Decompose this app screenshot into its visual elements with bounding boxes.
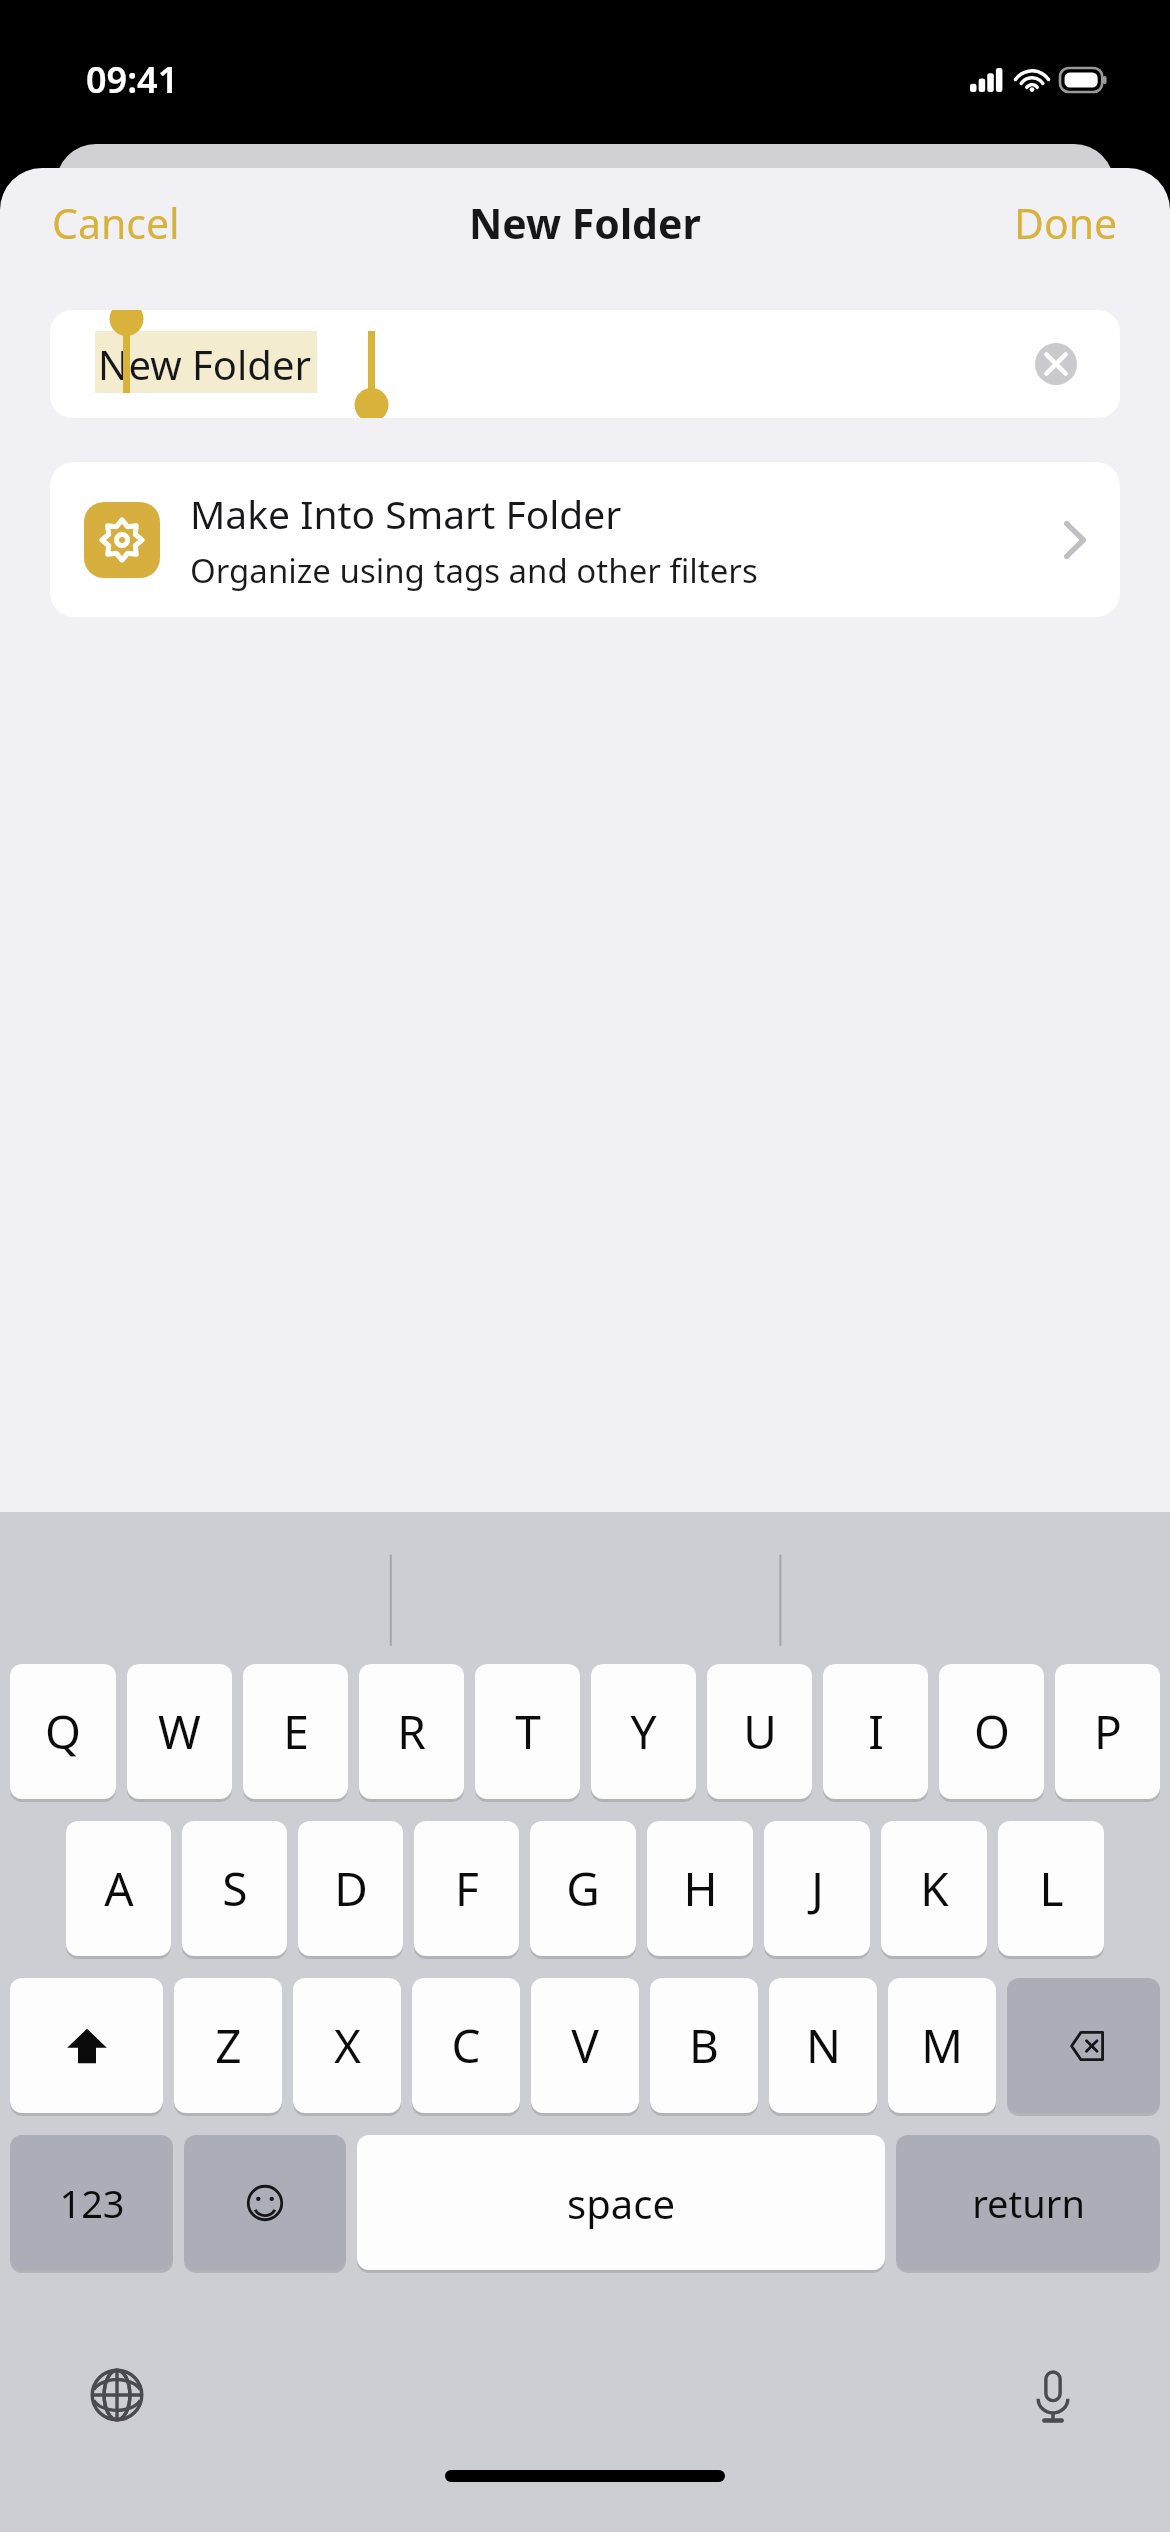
staticText: H — [683, 1857, 718, 1920]
button[interactable]: Clear text — [1028, 336, 1084, 392]
button[interactable]: Cancel — [26, 181, 206, 265]
button[interactable]: Change keyboard language — [72, 2350, 162, 2440]
button[interactable]: Make Into Smart Folder — [50, 462, 1120, 617]
staticText: D — [334, 1857, 368, 1920]
button[interactable]: P — [1055, 1664, 1160, 1799]
button[interactable]: D — [298, 1821, 403, 1956]
button[interactable]: G — [530, 1821, 636, 1956]
staticText: K — [920, 1857, 949, 1920]
staticText: O — [974, 1700, 1010, 1763]
button[interactable]: X — [293, 1978, 401, 2113]
button[interactable]: Shift — [10, 1978, 163, 2113]
staticText: New Folder — [98, 337, 311, 391]
staticText: E — [283, 1700, 309, 1763]
button[interactable]: F — [414, 1821, 519, 1956]
staticText: U — [743, 1700, 777, 1763]
button[interactable]: return — [896, 2135, 1160, 2270]
staticText: G — [566, 1857, 600, 1920]
button[interactable]: C — [412, 1978, 520, 2113]
button[interactable]: W — [127, 1664, 232, 1799]
button[interactable]: K — [881, 1821, 987, 1956]
button[interactable]: L — [998, 1821, 1104, 1956]
button[interactable]: M — [888, 1978, 996, 2113]
staticText: B — [689, 2014, 719, 2077]
button[interactable]: N — [769, 1978, 877, 2113]
button[interactable]: O — [939, 1664, 1044, 1799]
button[interactable]: Backspace — [1007, 1978, 1160, 2113]
button[interactable]: space — [357, 2135, 885, 2270]
staticText: T — [515, 1700, 541, 1763]
button[interactable]: Emoji — [184, 2135, 346, 2270]
staticText: W — [158, 1700, 201, 1763]
staticText: F — [455, 1857, 479, 1920]
button[interactable]: H — [647, 1821, 753, 1956]
button[interactable]: Done — [988, 181, 1144, 265]
button[interactable]: Y — [591, 1664, 696, 1799]
staticText: Cancel — [52, 195, 180, 251]
button[interactable]: U — [707, 1664, 812, 1799]
staticText: Y — [630, 1700, 657, 1763]
button[interactable]: B — [650, 1978, 758, 2113]
button[interactable]: A — [66, 1821, 171, 1956]
button[interactable]: Z — [174, 1978, 282, 2113]
button[interactable]: New Folder — [50, 310, 1120, 418]
staticText: R — [397, 1700, 426, 1763]
button[interactable]: E — [243, 1664, 348, 1799]
staticText: Q — [45, 1700, 81, 1763]
staticText: S — [222, 1857, 248, 1920]
staticText: I — [868, 1700, 884, 1763]
button[interactable]: Dictation — [1008, 2350, 1098, 2440]
staticText: L — [1039, 1857, 1064, 1920]
button[interactable]: V — [531, 1978, 639, 2113]
staticText: New Folder — [469, 195, 701, 251]
button[interactable]: R — [359, 1664, 464, 1799]
staticText: return — [972, 2177, 1085, 2229]
staticText: Z — [215, 2014, 242, 2077]
staticText: X — [334, 2014, 361, 2077]
staticText: 09:41 — [86, 55, 179, 104]
staticText: M — [921, 2014, 963, 2077]
staticText: N — [806, 2014, 841, 2077]
button[interactable]: J — [764, 1821, 870, 1956]
staticText: C — [451, 2014, 481, 2077]
button[interactable]: S — [182, 1821, 287, 1956]
staticText: 123 — [59, 2177, 125, 2229]
button[interactable]: Q — [10, 1664, 116, 1799]
staticText: A — [104, 1857, 134, 1920]
staticText: Organize using tags and other filters — [190, 548, 758, 593]
staticText: P — [1094, 1700, 1122, 1763]
button[interactable]: T — [475, 1664, 580, 1799]
button[interactable]: I — [823, 1664, 928, 1799]
staticText: space — [567, 2176, 675, 2230]
staticText: Make Into Smart Folder — [190, 487, 622, 540]
staticText: J — [811, 1857, 824, 1920]
staticText: V — [571, 2014, 599, 2077]
staticText: Done — [1014, 195, 1118, 251]
button[interactable]: 123 — [10, 2135, 173, 2270]
